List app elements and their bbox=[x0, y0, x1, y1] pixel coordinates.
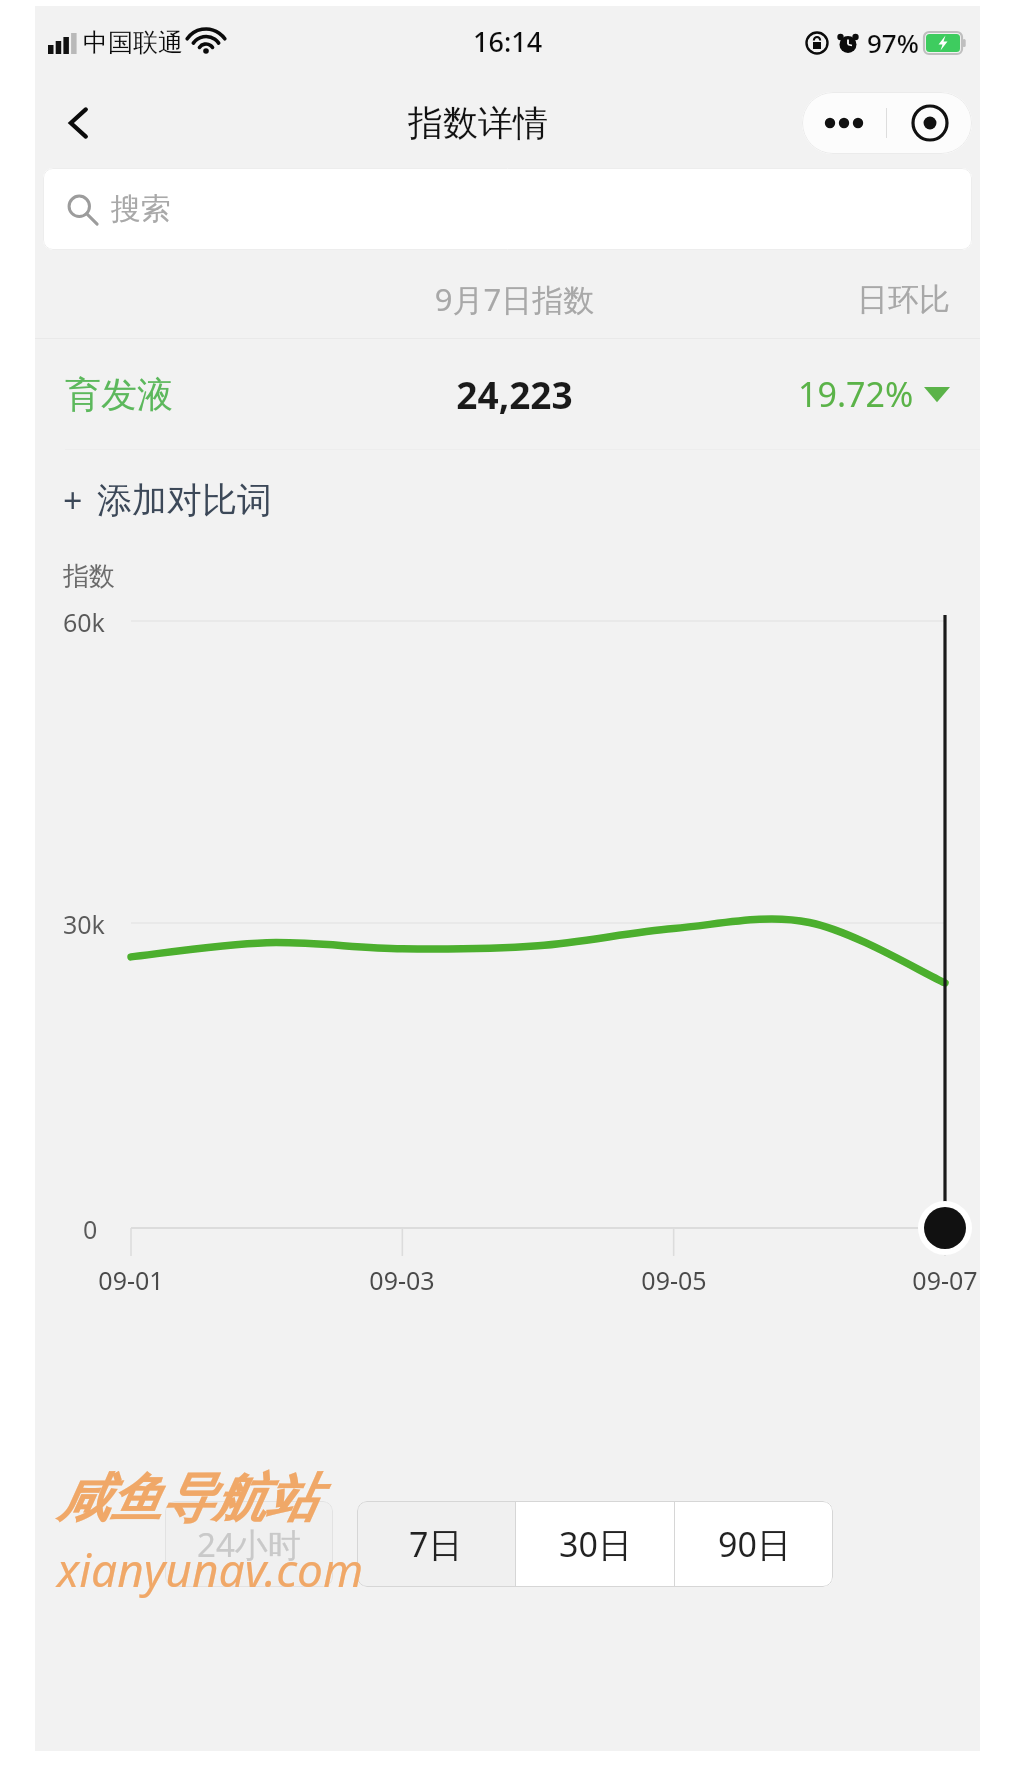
button[interactable]: Back bbox=[47, 91, 111, 155]
staticText: 9月7日指数 bbox=[347, 278, 682, 320]
staticText: 24小时 bbox=[197, 1522, 301, 1567]
staticText: 30日 bbox=[559, 1521, 632, 1567]
button[interactable]: 育发液 bbox=[35, 339, 980, 449]
staticText: 30k bbox=[63, 907, 105, 941]
button[interactable]: Close bbox=[887, 92, 972, 154]
staticText: 育发液 bbox=[65, 372, 347, 417]
staticText: 19.72% bbox=[798, 371, 914, 417]
button[interactable]: More bbox=[802, 92, 886, 154]
staticText: 16:14 bbox=[473, 23, 543, 60]
staticText: 24,223 bbox=[347, 369, 682, 419]
staticText: 97% bbox=[867, 25, 919, 60]
staticText: xianyunav.com bbox=[57, 1538, 364, 1601]
staticText: 指数 bbox=[63, 560, 115, 593]
staticText: 09-03 bbox=[358, 1263, 446, 1297]
button[interactable]: 7日 bbox=[357, 1501, 515, 1587]
staticText: 90日 bbox=[718, 1521, 791, 1567]
staticText: 09-07 bbox=[901, 1263, 989, 1297]
staticText: 日环比 bbox=[682, 280, 950, 319]
button[interactable]: 24小时 bbox=[165, 1501, 333, 1587]
staticText: 添加对比词 bbox=[97, 478, 272, 522]
staticText: 咸鱼导航站 bbox=[57, 1466, 317, 1532]
button[interactable]: 90日 bbox=[675, 1501, 833, 1587]
staticText: 0 bbox=[83, 1212, 98, 1246]
button[interactable]: + bbox=[35, 450, 980, 550]
staticText: 7日 bbox=[409, 1521, 463, 1567]
staticText: 搜索 bbox=[111, 190, 171, 228]
staticText: 09-05 bbox=[630, 1263, 718, 1297]
staticText: 09-01 bbox=[87, 1263, 175, 1297]
staticText: 中国联通 bbox=[83, 27, 183, 58]
staticText: 指数详情 bbox=[408, 101, 548, 145]
staticText: 60k bbox=[63, 605, 105, 639]
button[interactable]: 搜索 bbox=[43, 168, 972, 250]
button[interactable]: 30日 bbox=[516, 1501, 674, 1587]
staticText: + bbox=[63, 477, 83, 523]
